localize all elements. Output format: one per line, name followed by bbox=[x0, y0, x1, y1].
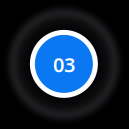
button[interactable]: Step 03 bbox=[30, 30, 98, 98]
staticText: 03 bbox=[53, 51, 75, 78]
